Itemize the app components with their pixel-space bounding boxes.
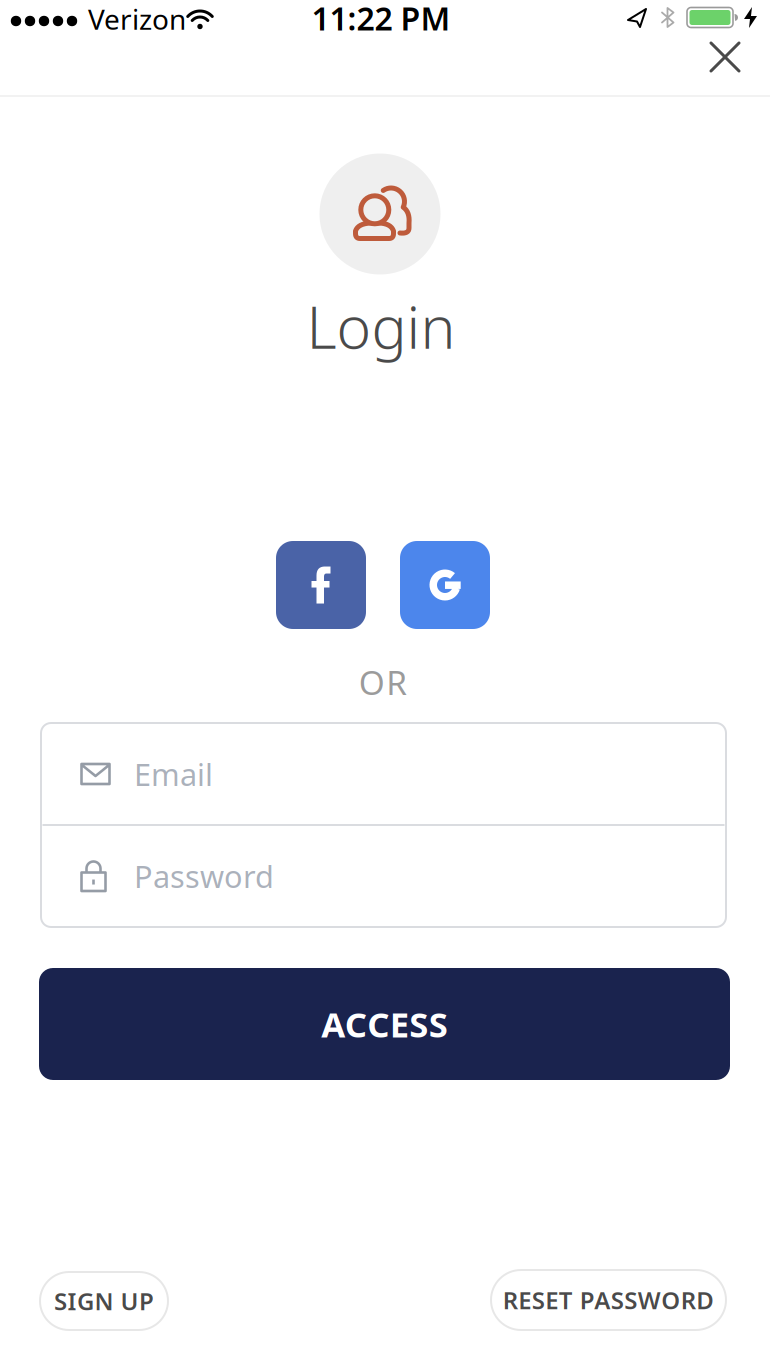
staticText: Password bbox=[134, 856, 274, 896]
staticText: RESET PASSWORD bbox=[503, 1284, 714, 1316]
button[interactable]: RESET PASSWORD bbox=[491, 1270, 726, 1330]
staticText: OR bbox=[359, 660, 407, 704]
staticText: SIGN UP bbox=[54, 1285, 154, 1317]
button[interactable] bbox=[707, 39, 743, 75]
button[interactable]: ACCESS bbox=[39, 968, 730, 1080]
button[interactable]: Email bbox=[41, 724, 726, 824]
button[interactable]: Password bbox=[41, 826, 726, 926]
staticText: Verizon bbox=[88, 0, 186, 38]
button[interactable]: SIGN UP bbox=[40, 1272, 168, 1330]
staticText: 11:22 PM bbox=[311, 0, 450, 39]
staticText: Email bbox=[134, 754, 213, 794]
staticText: Login bbox=[306, 287, 455, 365]
staticText: ACCESS bbox=[321, 1001, 448, 1047]
button[interactable] bbox=[400, 541, 490, 629]
button[interactable] bbox=[276, 541, 366, 629]
